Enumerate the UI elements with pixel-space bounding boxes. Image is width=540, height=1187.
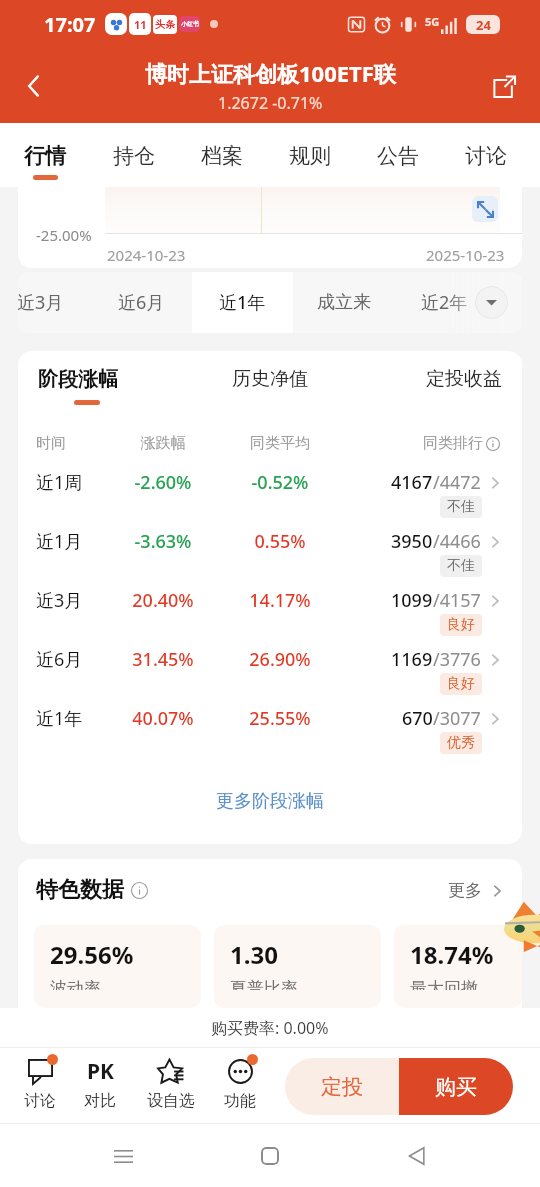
staticText: 同类排行	[423, 434, 483, 453]
staticText: /4157	[433, 588, 481, 613]
staticText: 购买费率: 0.00%	[211, 1017, 329, 1039]
button[interactable]: Fullscreen	[472, 196, 498, 222]
staticText: 2025-10-23	[426, 245, 505, 265]
staticText: -2.60%	[114, 470, 212, 495]
button[interactable]: 行情	[0, 123, 89, 187]
staticText: 24	[476, 16, 491, 34]
button[interactable]: 讨论	[4, 1048, 76, 1124]
button[interactable]: 更多阶段涨幅	[18, 790, 522, 844]
staticText: 成立来	[317, 291, 371, 314]
staticText: 行情	[24, 143, 66, 169]
staticText: 最大回撤	[410, 978, 478, 990]
button[interactable]: 定投	[285, 1058, 399, 1115]
button[interactable]: 公告	[354, 123, 442, 187]
button[interactable]: 近1周	[18, 453, 522, 512]
button[interactable]: 定投收益	[354, 367, 522, 404]
staticText: 更多阶段涨幅	[216, 790, 324, 813]
staticText: 讨论	[465, 143, 507, 169]
staticText: 0.55%	[212, 529, 348, 554]
staticText: /4466	[433, 529, 481, 554]
staticText: 头条	[155, 18, 175, 31]
staticText: 公告	[377, 143, 419, 169]
button[interactable]: More ranges	[475, 286, 508, 319]
button[interactable]: 近2年	[394, 272, 494, 333]
button[interactable]: 讨论	[442, 123, 530, 187]
staticText: 4167	[391, 470, 433, 495]
button[interactable]: 18.74%	[394, 925, 522, 1008]
button[interactable]: 设自选	[135, 1048, 207, 1124]
staticText: 40.07%	[114, 706, 212, 731]
staticText: PK	[87, 1057, 114, 1085]
staticText: 近1年	[36, 706, 114, 731]
button[interactable]: 近1年	[192, 272, 293, 333]
staticText: -25.00%	[36, 225, 92, 245]
button[interactable]: 更多	[448, 880, 504, 901]
button[interactable]: 近1月	[18, 512, 522, 571]
button[interactable]: 功能	[204, 1048, 276, 1124]
button[interactable]: 成立来	[293, 272, 394, 333]
button[interactable]: 近6月	[18, 630, 522, 689]
button[interactable]: 近6月	[91, 272, 192, 333]
staticText: 近6月	[36, 647, 114, 672]
staticText: 25.55%	[212, 706, 348, 731]
staticText: 近3月	[18, 290, 64, 315]
staticText: 阶段涨幅	[38, 367, 118, 392]
staticText: 功能	[224, 1091, 256, 1111]
button[interactable]: 近3月	[18, 272, 91, 333]
staticText: 17:07	[44, 11, 96, 38]
staticText: 同类平均	[212, 434, 348, 453]
staticText: 小红书	[181, 20, 199, 28]
button[interactable]: Share	[476, 58, 532, 114]
button[interactable]: 历史净值	[186, 367, 354, 404]
button[interactable]: 购买	[399, 1058, 513, 1115]
staticText: /3776	[433, 647, 481, 672]
staticText: 1.30	[230, 938, 278, 971]
button[interactable]: Recents	[99, 1132, 147, 1180]
staticText: 设自选	[147, 1091, 195, 1111]
staticText: 11	[134, 17, 147, 32]
staticText: 更多	[448, 880, 482, 901]
staticText: 规则	[289, 143, 331, 169]
staticText: /4472	[433, 470, 481, 495]
staticText: 31.45%	[114, 647, 212, 672]
staticText: 1169	[391, 647, 433, 672]
button[interactable]: 持仓	[89, 123, 178, 187]
staticText: 1.2672 -0.71%	[218, 92, 323, 114]
staticText: 670	[402, 706, 433, 731]
button[interactable]: 29.56%	[34, 925, 201, 1008]
staticText: 讨论	[24, 1091, 56, 1111]
button[interactable]: 对比	[64, 1048, 136, 1124]
staticText: 近1年	[219, 290, 266, 315]
staticText: 时间	[36, 434, 114, 453]
staticText: 3950	[391, 529, 433, 554]
button[interactable]: Back	[6, 58, 62, 114]
button[interactable]: Home	[246, 1132, 294, 1180]
staticText: 特色数据	[36, 876, 124, 904]
staticText: 优秀	[447, 734, 475, 752]
button[interactable]: 档案	[178, 123, 266, 187]
staticText: 良好	[447, 616, 475, 634]
staticText: 2024-10-23	[107, 245, 186, 265]
staticText: 5G	[425, 14, 440, 29]
button[interactable]: 1.30	[214, 925, 381, 1008]
button[interactable]: Back	[393, 1132, 441, 1180]
staticText: 定投收益	[426, 367, 502, 391]
staticText: 夏普比率	[230, 978, 298, 990]
staticText: -3.63%	[114, 529, 212, 554]
staticText: 对比	[84, 1091, 116, 1111]
staticText: 近1周	[36, 470, 114, 495]
staticText: 18.74%	[410, 938, 494, 971]
button[interactable]: 近1年	[18, 689, 522, 748]
staticText: 历史净值	[232, 367, 308, 391]
staticText: 14.17%	[212, 588, 348, 613]
staticText: 购买	[435, 1074, 477, 1100]
staticText: 近2年	[421, 290, 468, 315]
staticText: 近6月	[118, 290, 165, 315]
staticText: 1099	[391, 588, 433, 613]
button[interactable]: 近3月	[18, 571, 522, 630]
staticText: 20.40%	[114, 588, 212, 613]
button[interactable]: 规则	[266, 123, 354, 187]
button[interactable]: 阶段涨幅	[18, 367, 186, 405]
staticText: -0.52%	[212, 470, 348, 495]
staticText: 博时上证科创板100ETF联	[145, 58, 396, 88]
